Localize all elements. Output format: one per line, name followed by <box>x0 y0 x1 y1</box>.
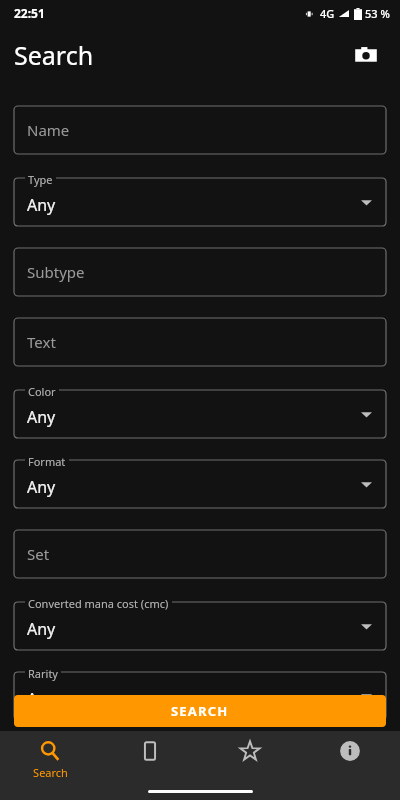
button[interactable]: Scan card with camera <box>346 35 386 75</box>
staticText: Name <box>27 120 70 140</box>
button[interactable]: Favourites <box>200 731 300 800</box>
staticText: Any <box>27 618 56 640</box>
staticText: Any <box>27 406 56 428</box>
button[interactable]: Text <box>14 318 386 366</box>
button[interactable]: Info <box>300 731 400 800</box>
staticText: SEARCH <box>171 702 229 720</box>
staticText: Search <box>33 765 68 780</box>
staticText: 22:51 <box>14 5 45 21</box>
staticText: 53 % <box>365 6 390 21</box>
staticText: Format <box>28 454 66 469</box>
staticText: Any <box>27 688 56 710</box>
staticText: Type <box>28 172 53 187</box>
staticText: 4G <box>320 6 335 21</box>
staticText: Converted mana cost (cmc) <box>28 596 169 611</box>
button[interactable]: Search <box>0 731 100 800</box>
button[interactable]: SEARCH <box>14 695 386 727</box>
staticText: Search <box>14 38 94 72</box>
staticText: Any <box>27 194 56 216</box>
staticText: Text <box>27 332 56 352</box>
staticText: Rarity <box>28 666 58 681</box>
button[interactable]: Any <box>14 390 386 438</box>
button[interactable]: Any <box>14 602 386 650</box>
button[interactable]: Subtype <box>14 248 386 296</box>
staticText: Set <box>27 544 50 564</box>
staticText: Subtype <box>27 262 85 282</box>
button[interactable]: Set <box>14 530 386 578</box>
staticText: Color <box>28 384 56 399</box>
staticText: Any <box>27 476 56 498</box>
button[interactable]: Name <box>14 106 386 154</box>
button[interactable]: Cards <box>100 731 200 800</box>
button[interactable]: Any <box>14 460 386 508</box>
button[interactable]: Any <box>14 178 386 226</box>
button[interactable]: Any <box>14 672 386 720</box>
